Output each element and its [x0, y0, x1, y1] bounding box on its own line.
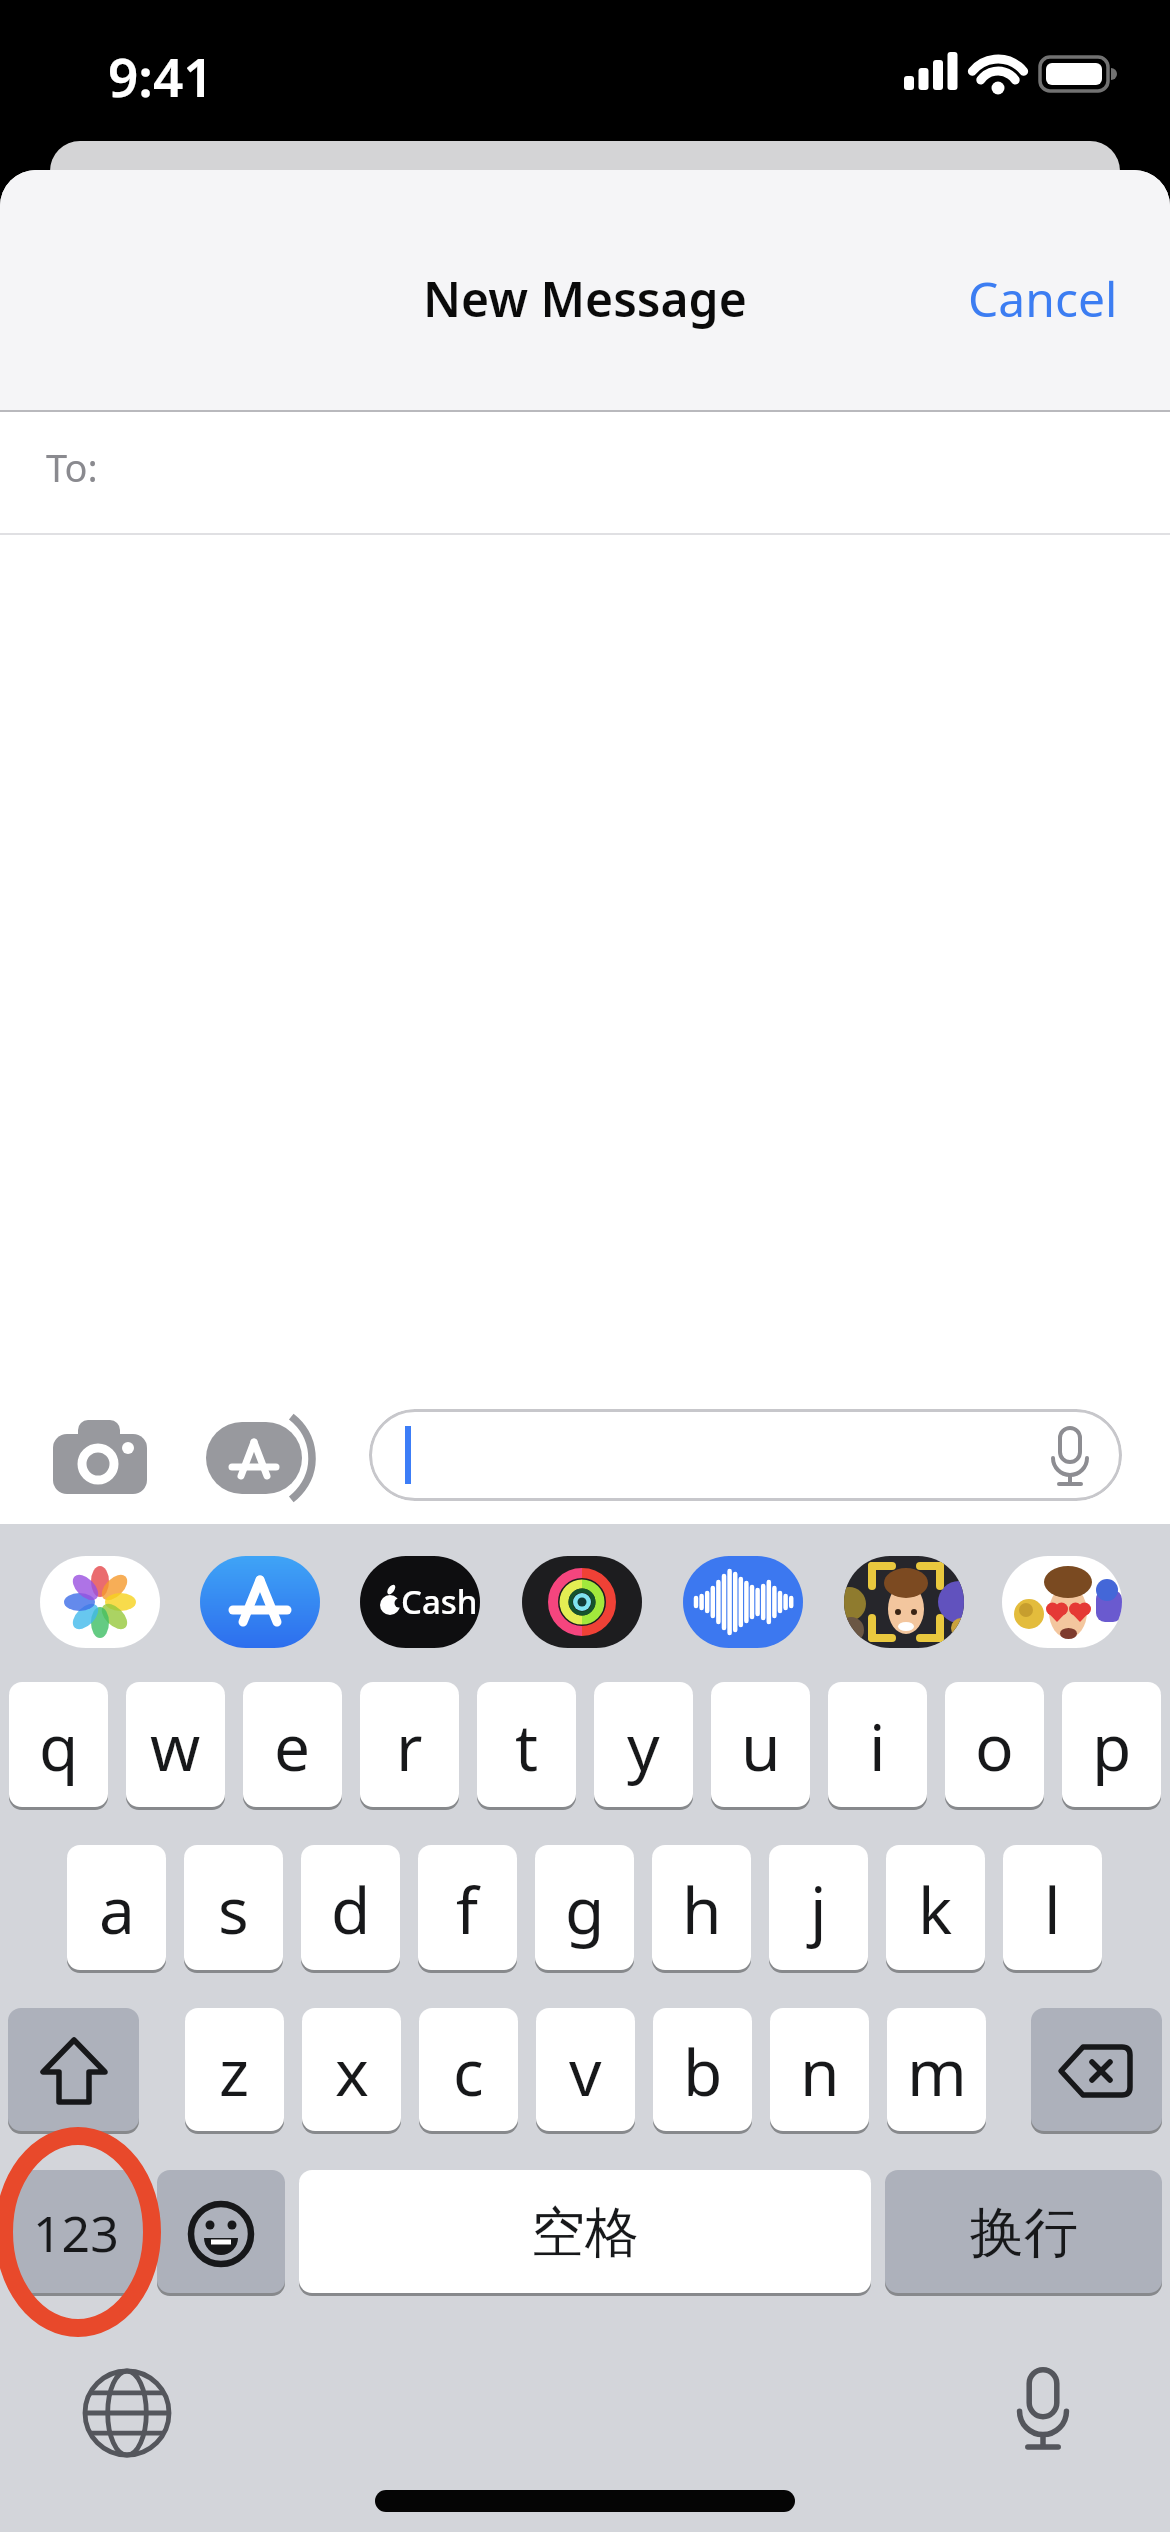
button[interactable]: y — [594, 1682, 693, 1810]
button[interactable] — [1002, 1556, 1122, 1648]
button[interactable] — [369, 1409, 1122, 1501]
staticText: 空格 — [531, 2199, 639, 2267]
button[interactable]: q — [9, 1682, 108, 1810]
staticText: e — [274, 1703, 311, 1790]
staticText: x — [335, 2028, 369, 2115]
staticText: f — [456, 1866, 479, 1953]
button[interactable] — [77, 2363, 177, 2463]
staticText: q — [39, 1703, 79, 1790]
staticText: r — [396, 1703, 423, 1790]
button[interactable] — [50, 1414, 150, 1498]
staticText: c — [453, 2028, 484, 2115]
staticText: g — [565, 1866, 605, 1953]
button[interactable]: f — [418, 1845, 517, 1973]
button[interactable]: m — [887, 2008, 986, 2134]
staticText: j — [810, 1866, 827, 1953]
button[interactable] — [1031, 2008, 1162, 2134]
button[interactable]: Cash — [360, 1556, 480, 1648]
button[interactable]: i — [828, 1682, 927, 1810]
button[interactable] — [157, 2170, 285, 2296]
button[interactable]: 空格 — [299, 2170, 871, 2296]
staticText: k — [918, 1866, 953, 1953]
staticText: p — [1092, 1703, 1132, 1790]
button[interactable]: s — [184, 1845, 283, 1973]
staticText: i — [869, 1703, 886, 1790]
staticText: n — [800, 2028, 840, 2115]
button[interactable]: e — [243, 1682, 342, 1810]
button[interactable]: a — [67, 1845, 166, 1973]
staticText: b — [683, 2028, 723, 2115]
staticText: v — [569, 2028, 602, 2115]
staticText: To: — [46, 441, 98, 493]
button[interactable] — [8, 2008, 139, 2134]
button[interactable] — [40, 1556, 160, 1648]
staticText: 9:41 — [108, 40, 214, 112]
button[interactable] — [683, 1556, 803, 1648]
staticText: h — [682, 1866, 722, 1953]
staticText: t — [515, 1703, 539, 1790]
button[interactable]: n — [770, 2008, 869, 2134]
button[interactable]: o — [945, 1682, 1044, 1810]
staticText: z — [219, 2028, 250, 2115]
button[interactable]: Cancel — [968, 266, 1118, 331]
staticText: s — [218, 1866, 249, 1953]
staticText: u — [741, 1703, 781, 1790]
button[interactable]: w — [126, 1682, 225, 1810]
button[interactable]: x — [302, 2008, 401, 2134]
button[interactable]: r — [360, 1682, 459, 1810]
button[interactable]: 换行 — [885, 2170, 1162, 2296]
staticText: d — [331, 1866, 371, 1953]
button[interactable] — [844, 1556, 964, 1648]
button[interactable]: h — [652, 1845, 751, 1973]
button[interactable]: u — [711, 1682, 810, 1810]
button[interactable]: b — [653, 2008, 752, 2134]
button[interactable]: t — [477, 1682, 576, 1810]
button[interactable]: d — [301, 1845, 400, 1973]
button[interactable] — [200, 1556, 320, 1648]
button[interactable]: z — [185, 2008, 284, 2134]
staticText: y — [627, 1703, 660, 1790]
staticText: Cash — [401, 1579, 478, 1624]
staticText: l — [1044, 1866, 1061, 1953]
staticText: w — [150, 1703, 201, 1790]
staticText: o — [975, 1703, 1014, 1790]
staticText: a — [99, 1866, 135, 1953]
staticText: m — [907, 2028, 967, 2115]
staticText: New Message — [423, 266, 747, 331]
button[interactable] — [206, 1422, 322, 1498]
button[interactable]: k — [886, 1845, 985, 1973]
button[interactable]: v — [536, 2008, 635, 2134]
staticText: 123 — [33, 2199, 119, 2267]
button[interactable]: j — [769, 1845, 868, 1973]
staticText: 换行 — [970, 2199, 1078, 2267]
button[interactable]: p — [1062, 1682, 1161, 1810]
button[interactable]: c — [419, 2008, 518, 2134]
button[interactable] — [993, 2355, 1093, 2465]
button[interactable]: 123 — [8, 2170, 143, 2296]
staticText: Cancel — [968, 266, 1118, 331]
button[interactable]: g — [535, 1845, 634, 1973]
button[interactable]: To: — [0, 412, 1170, 533]
button[interactable]: l — [1003, 1845, 1102, 1973]
button[interactable] — [522, 1556, 642, 1648]
